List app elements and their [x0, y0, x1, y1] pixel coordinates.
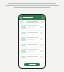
button[interactable]	[20, 21, 23, 23]
button[interactable]	[20, 48, 44, 54]
button[interactable]	[26, 21, 39, 23]
button[interactable]	[20, 31, 44, 35]
button[interactable]	[20, 24, 44, 30]
button[interactable]: Navigation menu	[20, 17, 22, 19]
button[interactable]	[20, 43, 44, 47]
button[interactable]	[24, 63, 40, 66]
button[interactable]: Navigation menu	[19, 15, 45, 20]
button[interactable]: Search	[42, 17, 44, 19]
button[interactable]	[20, 55, 44, 59]
button[interactable]	[20, 36, 44, 42]
